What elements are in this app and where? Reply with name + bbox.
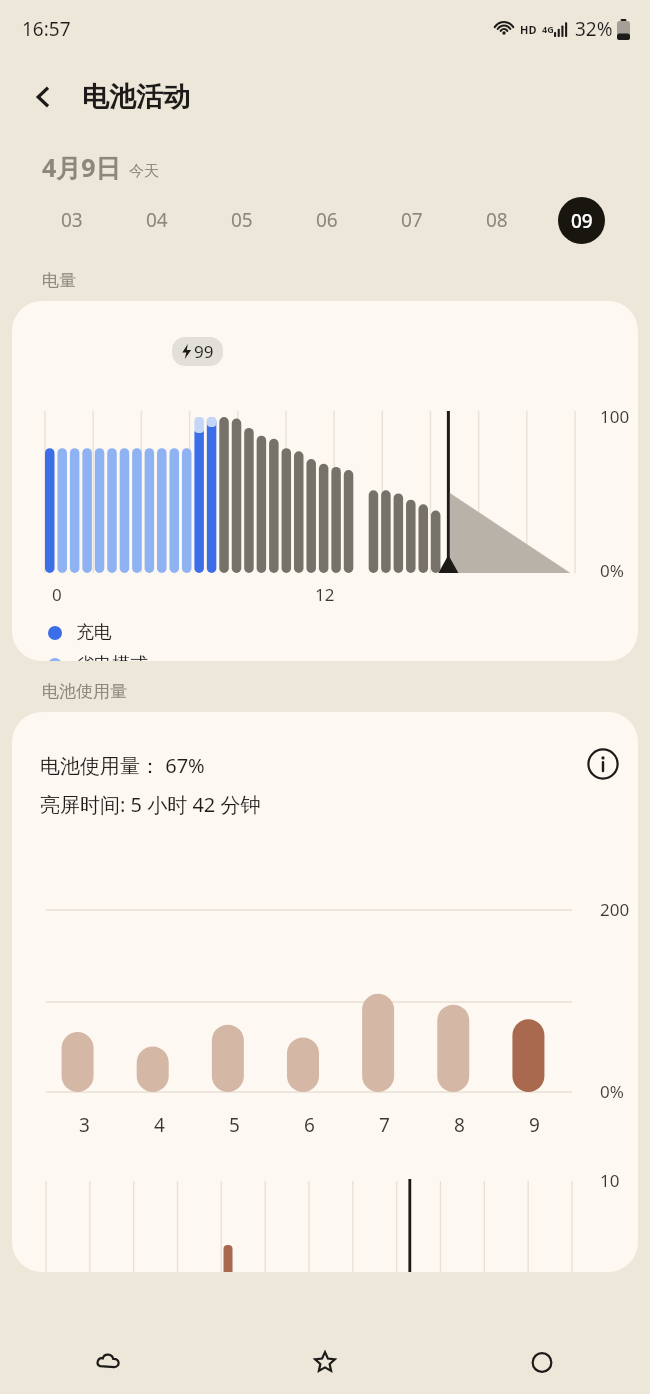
staticText: 9 (529, 1112, 540, 1138)
staticText: 4月9日 (42, 150, 121, 184)
staticText: 电量 (42, 270, 76, 291)
staticText: 亮屏时间: 5 小时 42 分钟 (40, 791, 261, 818)
button[interactable]: Info (579, 740, 627, 788)
staticText: 今天 (129, 162, 159, 181)
button[interactable]: Home (216, 1330, 433, 1394)
staticText: 电池使用量： 67% (40, 752, 205, 779)
button[interactable]: Recents (0, 1330, 216, 1394)
staticText: 05 (231, 207, 253, 233)
staticText: 09 (571, 208, 593, 234)
button[interactable]: 09 (539, 193, 624, 247)
button[interactable]: 03 (30, 193, 114, 247)
staticText: 3 (79, 1112, 90, 1138)
button[interactable]: 电池使用量： 67% (12, 712, 638, 1272)
staticText: 6 (304, 1112, 315, 1138)
staticText: 0% (600, 559, 638, 582)
staticText: 10 (600, 1169, 620, 1192)
staticText: 0% (600, 1080, 624, 1103)
staticText: 99 (194, 340, 214, 363)
staticText: 08 (486, 207, 508, 233)
staticText: 07 (401, 207, 423, 233)
staticText: 电池使用量 (42, 681, 127, 702)
staticText: 8 (454, 1112, 465, 1138)
staticText: 200 (600, 898, 630, 921)
button[interactable]: Back (433, 1330, 650, 1394)
staticText: 电池活动 (82, 80, 190, 114)
staticText: 04 (146, 207, 168, 233)
staticText: 4 (154, 1112, 165, 1138)
staticText: HD (520, 22, 537, 37)
button[interactable]: 08 (454, 193, 539, 247)
staticText: 16:57 (22, 16, 71, 42)
button[interactable]: 07 (369, 193, 454, 247)
button[interactable]: Back (18, 72, 68, 122)
staticText: 省电模式 (76, 653, 148, 661)
button[interactable]: 05 (199, 193, 284, 247)
staticText: 06 (316, 207, 338, 233)
staticText: 100 (600, 405, 638, 428)
staticText: 4G (542, 23, 554, 35)
staticText: 7 (379, 1112, 390, 1138)
staticText: 充电 (76, 621, 112, 644)
staticText: 03 (61, 207, 83, 233)
button[interactable]: 06 (284, 193, 369, 247)
staticText: 32% (575, 16, 613, 42)
button[interactable]: 99 (12, 301, 638, 661)
staticText: 5 (229, 1112, 240, 1138)
staticText: 12 (315, 583, 335, 606)
button[interactable]: 04 (114, 193, 199, 247)
staticText: 0 (52, 583, 62, 606)
